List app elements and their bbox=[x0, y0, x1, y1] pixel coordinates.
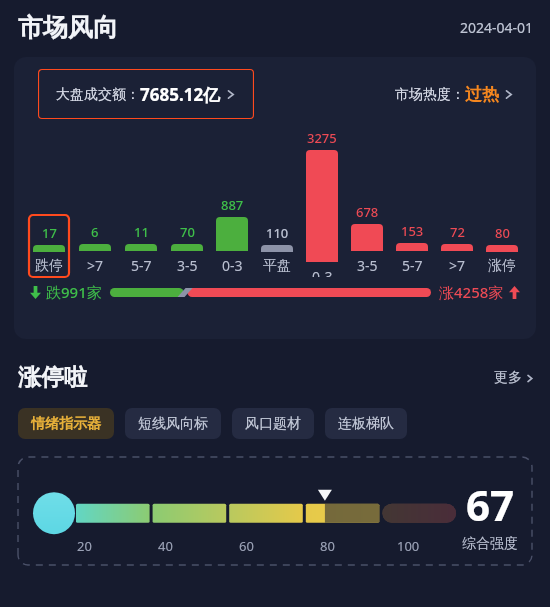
button[interactable]: 风口题材 bbox=[232, 408, 314, 439]
staticText: 平盘 bbox=[263, 257, 291, 275]
button[interactable]: 连板梯队 bbox=[325, 408, 407, 439]
staticText: 60 bbox=[239, 537, 254, 555]
staticText: 100 bbox=[397, 537, 420, 555]
staticText: 70 bbox=[180, 223, 195, 241]
staticText: 情绪指示器 bbox=[31, 415, 101, 433]
button[interactable]: 11 bbox=[118, 129, 164, 277]
staticText: 3275 bbox=[307, 129, 337, 147]
button[interactable]: 大盘成交额： bbox=[38, 69, 254, 119]
button[interactable]: 市场热度： bbox=[395, 84, 514, 105]
button[interactable]: 情绪指示器 bbox=[18, 408, 114, 439]
staticText: 5-7 bbox=[402, 256, 423, 275]
staticText: 110 bbox=[266, 224, 289, 242]
staticText: 678 bbox=[356, 203, 379, 221]
staticText: 3-5 bbox=[357, 256, 378, 275]
button[interactable]: 70 bbox=[164, 129, 209, 277]
button[interactable]: 3275 bbox=[299, 129, 344, 277]
button[interactable]: 678 bbox=[344, 129, 389, 277]
staticText: 市场风向 bbox=[18, 12, 118, 43]
staticText: 涨停 bbox=[488, 257, 516, 275]
button[interactable]: 887 bbox=[209, 129, 254, 277]
staticText: 0-3 bbox=[312, 267, 333, 277]
button[interactable]: 80 bbox=[479, 129, 524, 277]
staticText: 153 bbox=[401, 222, 424, 240]
staticText: 11 bbox=[134, 223, 149, 241]
staticText: 更多 bbox=[494, 369, 522, 387]
staticText: 跌停 bbox=[35, 257, 63, 275]
staticText: 80 bbox=[320, 537, 335, 555]
staticText: 80 bbox=[495, 224, 510, 242]
staticText: 887 bbox=[221, 196, 244, 214]
staticText: 67 bbox=[466, 476, 515, 533]
staticText: 市场热度： bbox=[395, 86, 465, 104]
button[interactable]: 更多 bbox=[494, 369, 534, 387]
button[interactable]: 短线风向标 bbox=[125, 408, 221, 439]
staticText: 0-3 bbox=[222, 256, 243, 275]
staticText: 72 bbox=[450, 223, 465, 241]
staticText: 大盘成交额： bbox=[56, 86, 140, 104]
staticText: 6 bbox=[91, 223, 99, 241]
staticText: 涨4258家 bbox=[439, 282, 504, 302]
button[interactable]: 72 bbox=[434, 129, 479, 277]
staticText: 20 bbox=[77, 537, 92, 555]
staticText: 跌991家 bbox=[46, 282, 102, 302]
staticText: 5-7 bbox=[131, 256, 152, 275]
staticText: 3-5 bbox=[177, 256, 198, 275]
staticText: >7 bbox=[87, 256, 104, 275]
staticText: 17 bbox=[42, 224, 57, 242]
button[interactable]: 110 bbox=[254, 129, 299, 277]
staticText: 连板梯队 bbox=[338, 415, 394, 433]
button[interactable]: 6 bbox=[72, 129, 118, 277]
staticText: 40 bbox=[158, 537, 173, 555]
staticText: 2024-04-01 bbox=[460, 18, 534, 37]
staticText: 风口题材 bbox=[245, 415, 301, 433]
button[interactable]: 153 bbox=[389, 129, 434, 277]
staticText: 短线风向标 bbox=[138, 415, 208, 433]
staticText: 涨停啦 bbox=[18, 363, 87, 392]
staticText: >7 bbox=[449, 256, 466, 275]
staticText: 综合强度 bbox=[462, 535, 518, 553]
staticText: 7685.12亿 bbox=[140, 83, 221, 106]
staticText: 过热 bbox=[465, 84, 499, 105]
button[interactable]: 17 bbox=[26, 129, 72, 277]
